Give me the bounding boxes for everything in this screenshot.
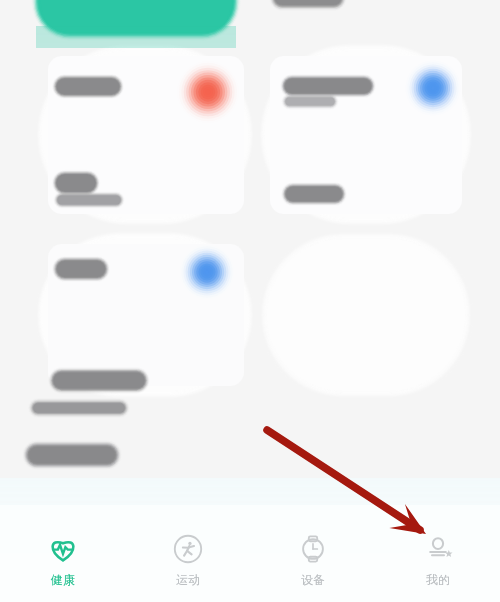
button[interactable]: 设备: [250, 512, 375, 602]
staticText: 健康: [51, 572, 75, 587]
button[interactable]: 健康: [0, 512, 125, 602]
button[interactable]: 我的: [375, 512, 500, 602]
staticText: 设备: [301, 572, 325, 587]
staticText: 我的: [426, 572, 450, 587]
button[interactable]: 运动: [125, 512, 250, 602]
staticText: 运动: [176, 572, 200, 587]
